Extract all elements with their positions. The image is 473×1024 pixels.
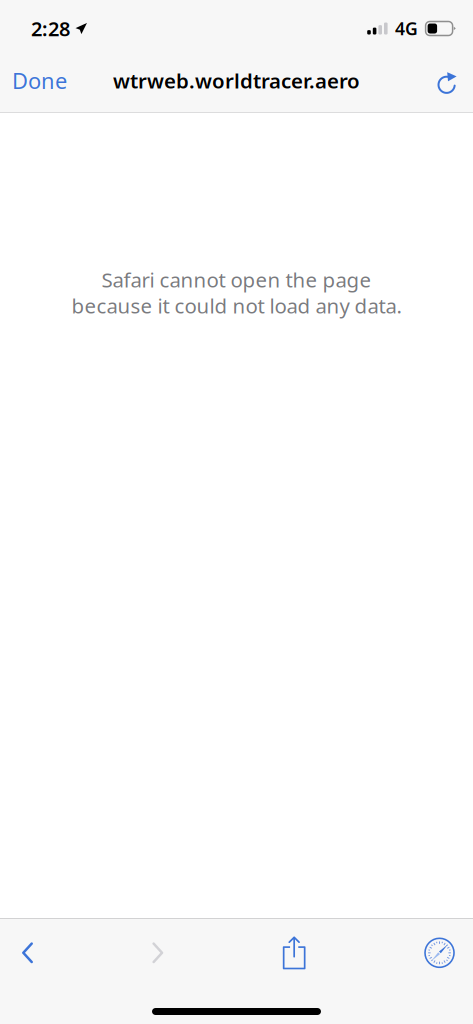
button[interactable]: Open in Safari: [425, 926, 454, 980]
button[interactable]: Back: [22, 926, 33, 980]
staticText: 4G: [395, 16, 418, 40]
staticText: 2:28: [31, 15, 70, 42]
button[interactable]: Share: [283, 926, 306, 980]
staticText: Safari cannot open the page: [101, 266, 371, 294]
staticText: Done: [12, 66, 67, 95]
staticText: wtrweb.worldtracer.aero: [113, 67, 360, 94]
button[interactable]: Reload: [424, 57, 473, 105]
staticText: because it could not load any data.: [71, 292, 401, 319]
button[interactable]: Done: [0, 51, 81, 112]
button[interactable]: Forward: [152, 926, 163, 980]
